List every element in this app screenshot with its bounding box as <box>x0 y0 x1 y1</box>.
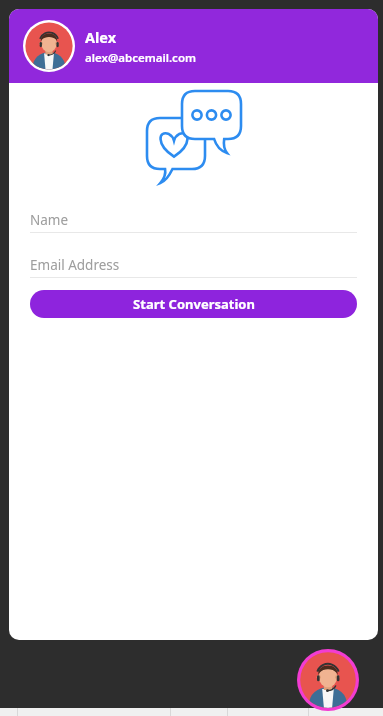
button[interactable]: Alex <box>9 9 378 83</box>
staticText: Start Conversation <box>133 295 255 313</box>
button[interactable]: Name <box>30 207 357 233</box>
button[interactable]: Start Conversation <box>30 290 357 318</box>
button[interactable]: Open chat with Alex <box>296 648 360 712</box>
button[interactable]: Email Address <box>30 252 357 278</box>
staticText: Email Address <box>30 256 120 274</box>
staticText: Alex <box>85 27 117 47</box>
staticText: alex@abcemail.com <box>85 50 197 66</box>
staticText: Name <box>30 211 69 229</box>
